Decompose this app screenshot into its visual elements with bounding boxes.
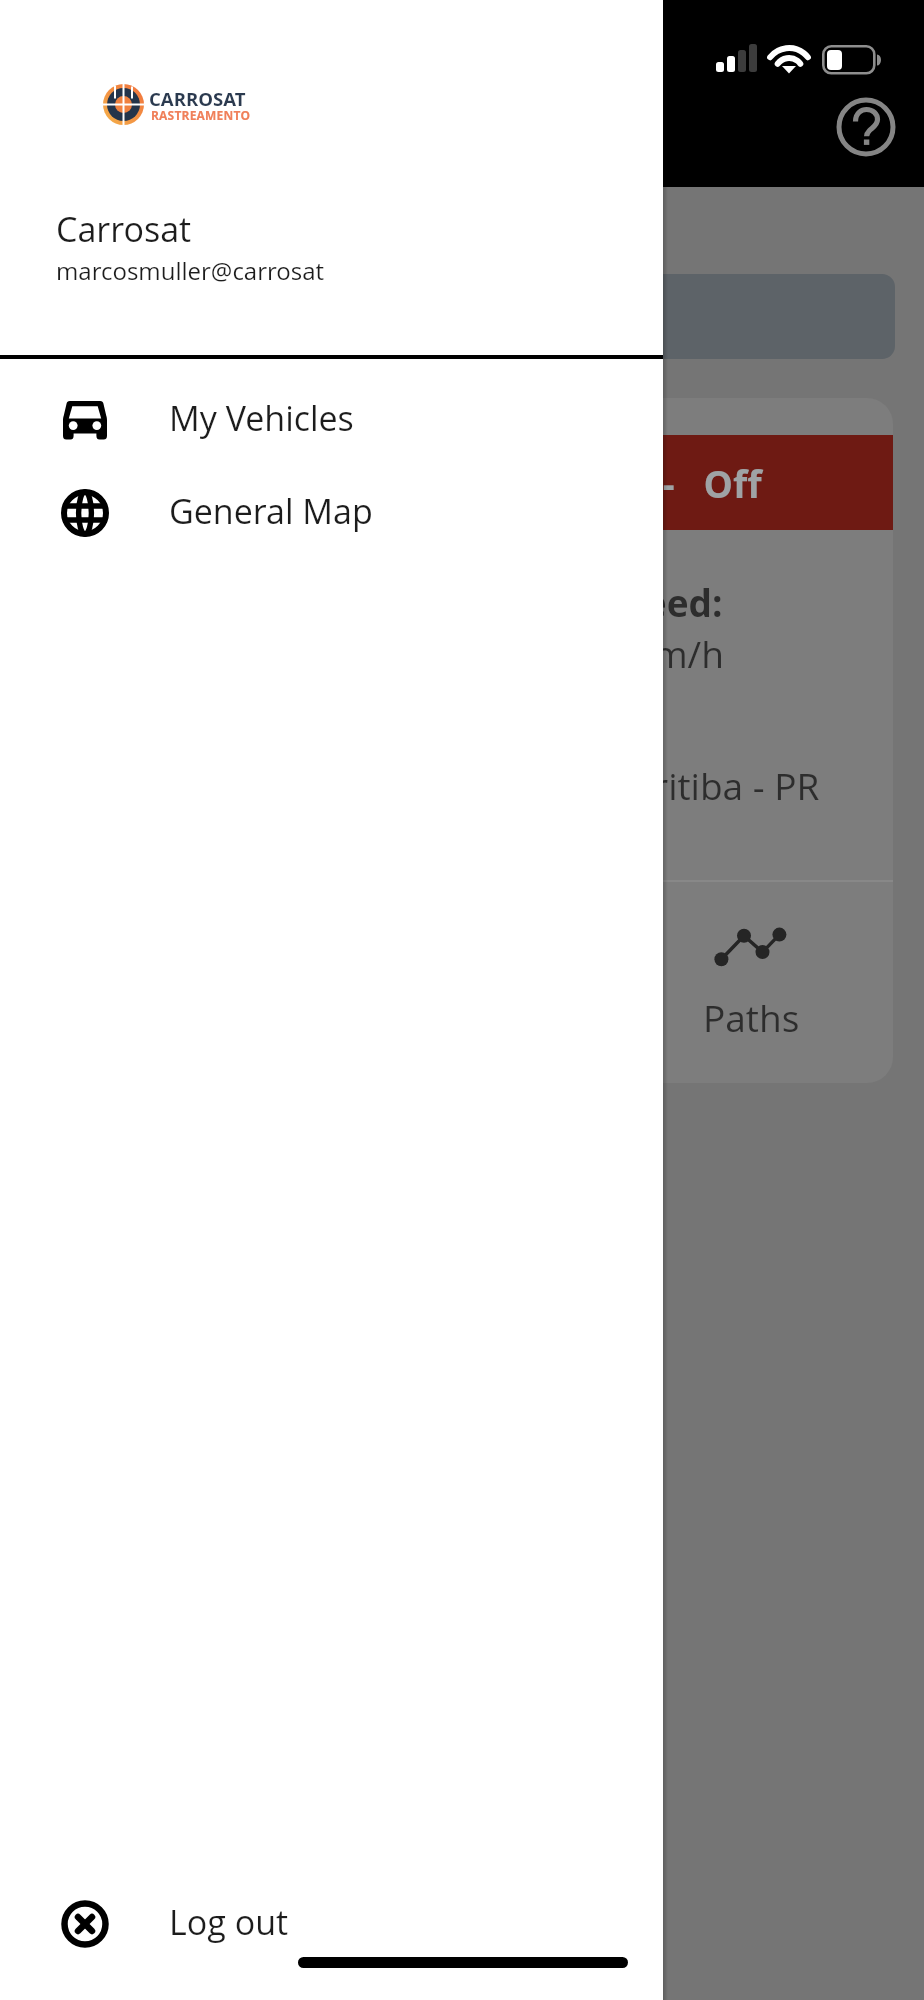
staticText: Curitiba - PR (607, 760, 820, 810)
staticText: Speed: (601, 577, 723, 627)
staticText: CARROSAT (149, 86, 246, 111)
staticText: General Map (169, 488, 373, 534)
staticText: Paths (703, 992, 800, 1042)
button[interactable]: My Vehicles (0, 382, 663, 458)
staticText: RASTREAMENTO (151, 107, 251, 123)
button[interactable] (300, 274, 895, 359)
staticText: 0 km/h (603, 628, 724, 678)
button[interactable]: Help (835, 96, 897, 158)
staticText: Engine blocked - Off (376, 458, 762, 508)
button[interactable]: Log out (0, 1886, 663, 1962)
staticText: My Vehicles (169, 395, 354, 441)
staticText: marcosmuller@carrosat (56, 254, 325, 287)
button[interactable]: Paths (600, 885, 893, 1083)
staticText: Log out (169, 1899, 289, 1945)
staticText: Carrosat (56, 206, 192, 252)
button[interactable]: General Map (0, 475, 663, 551)
